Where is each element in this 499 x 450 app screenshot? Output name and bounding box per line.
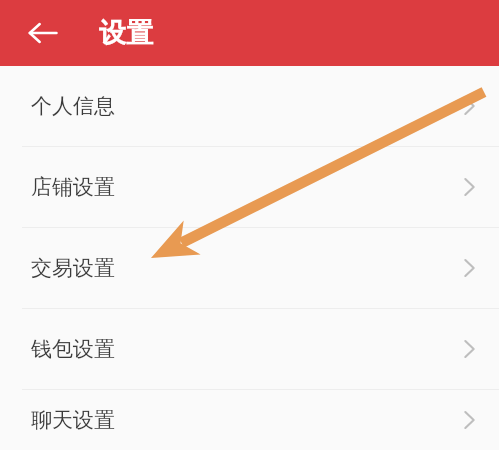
staticText: 交易设置 — [31, 255, 115, 281]
staticText: 聊天设置 — [31, 407, 115, 433]
button[interactable]: 交易设置 — [0, 228, 499, 308]
button[interactable]: 聊天设置 — [0, 390, 499, 450]
staticText: 钱包设置 — [31, 336, 115, 362]
button[interactable]: Back — [20, 10, 66, 56]
staticText: 店铺设置 — [31, 174, 115, 200]
button[interactable]: 钱包设置 — [0, 309, 499, 389]
button[interactable]: 个人信息 — [0, 66, 499, 146]
staticText: 个人信息 — [31, 93, 115, 119]
button[interactable]: 店铺设置 — [0, 147, 499, 227]
staticText: 设置 — [99, 16, 153, 50]
